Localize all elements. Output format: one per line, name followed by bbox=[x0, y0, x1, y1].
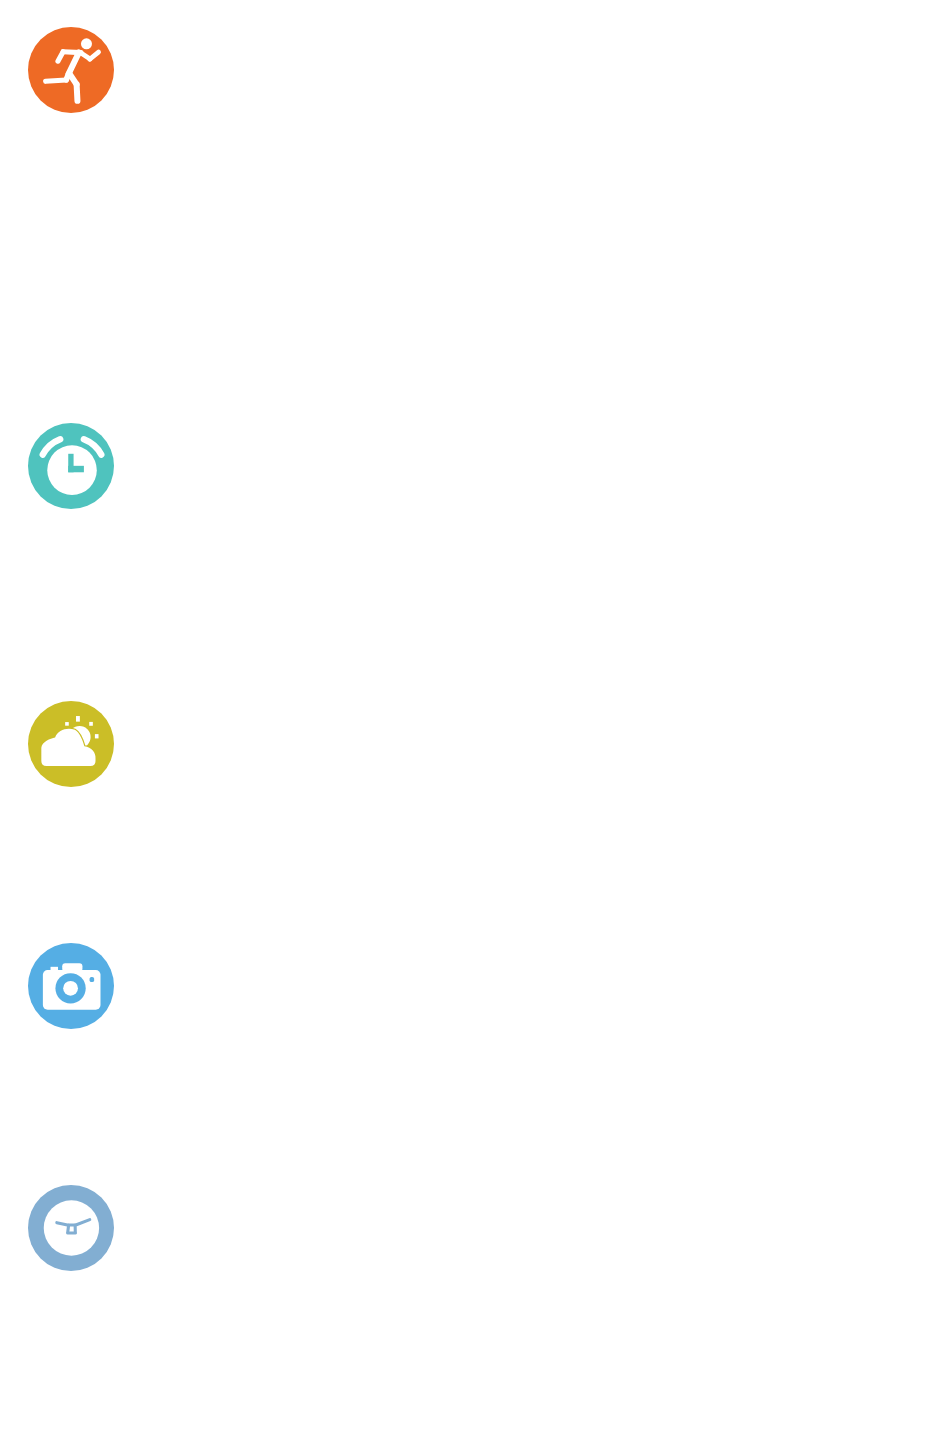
button[interactable]: Running bbox=[0, 0, 950, 268]
button[interactable]: Weather bbox=[0, 605, 950, 865]
button[interactable]: Camera bbox=[0, 865, 950, 1107]
button[interactable]: Drone bbox=[0, 1107, 950, 1456]
button[interactable]: Alarm bbox=[0, 268, 950, 605]
